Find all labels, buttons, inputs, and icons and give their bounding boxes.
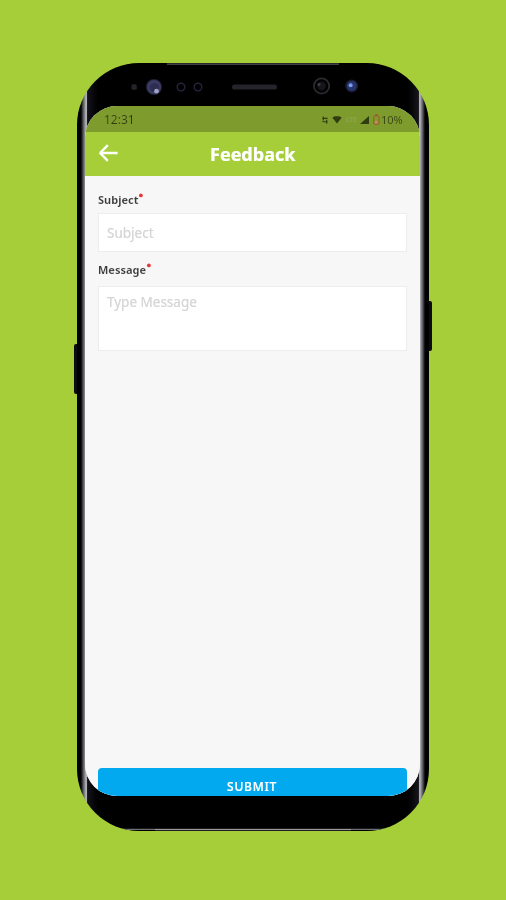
button[interactable]: Subject <box>98 213 407 252</box>
staticText: 12:31 <box>104 111 135 127</box>
staticText: SUBMIT <box>227 778 278 794</box>
staticText: LTE <box>346 115 357 124</box>
staticText: Subject <box>98 192 139 207</box>
staticText: Type Message <box>107 293 197 311</box>
staticText: 10% <box>381 112 403 127</box>
button[interactable]: Type Message <box>98 286 407 351</box>
staticText: Message <box>98 262 147 277</box>
button[interactable]: SUBMIT <box>98 768 407 796</box>
button[interactable]: Back <box>93 137 123 171</box>
staticText: Feedback <box>210 142 296 167</box>
staticText: Subject <box>107 224 154 242</box>
